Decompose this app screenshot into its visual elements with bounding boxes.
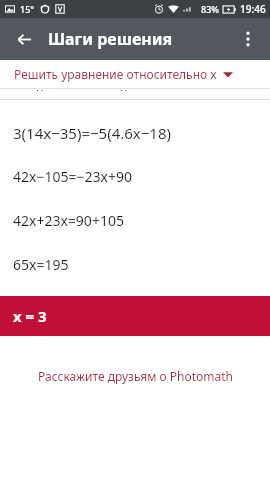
- button[interactable]: More options: [232, 23, 264, 55]
- staticText: u: [120, 84, 128, 91]
- staticText: Шаги решения: [48, 28, 173, 50]
- staticText: 42x−105=−23x+90: [13, 167, 132, 186]
- staticText: 83%: [201, 3, 219, 15]
- staticText: 19:46: [240, 2, 266, 16]
- staticText: 15°: [20, 3, 35, 15]
- staticText: Расскажите друзьям о Photomath: [38, 368, 233, 384]
- staticText: Решить уравнение относительно x: [14, 66, 217, 82]
- button[interactable]: Back: [8, 23, 40, 55]
- button[interactable]: x = 3: [0, 296, 270, 336]
- staticText: u: [36, 84, 44, 91]
- staticText: x = 3: [13, 306, 47, 326]
- staticText: 42x+23x=90+105: [13, 211, 124, 230]
- button[interactable]: Решить уравнение относительно x: [0, 60, 270, 88]
- staticText: 3(14x−35)=−5(4.6x−18): [13, 123, 172, 143]
- button[interactable]: Расскажите друзьям о Photomath: [0, 368, 270, 384]
- staticText: 65x=195: [13, 255, 69, 274]
